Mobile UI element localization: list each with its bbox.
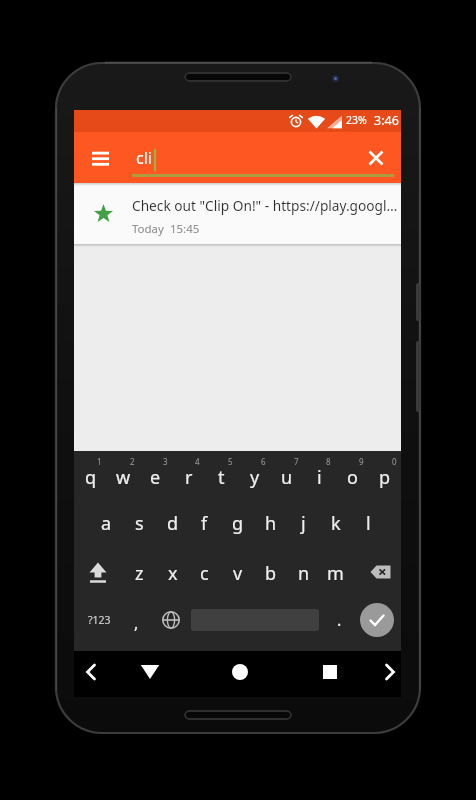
- button[interactable]: l: [352, 503, 385, 543]
- button[interactable]: .: [327, 605, 351, 635]
- staticText: 4: [195, 456, 200, 467]
- staticText: i: [317, 465, 322, 490]
- button[interactable]: z: [123, 553, 156, 593]
- staticText: .: [337, 609, 342, 631]
- button[interactable]: r: [172, 457, 205, 497]
- staticText: k: [331, 511, 341, 536]
- staticText: 1: [97, 456, 102, 467]
- staticText: l: [366, 511, 371, 536]
- staticText: p: [379, 465, 391, 490]
- button[interactable]: t: [205, 457, 238, 497]
- staticText: b: [265, 561, 277, 586]
- staticText: 5: [228, 456, 233, 467]
- button[interactable]: ?123: [77, 605, 121, 635]
- staticText: u: [281, 465, 293, 490]
- staticText: n: [298, 561, 310, 586]
- staticText: ,: [134, 612, 139, 634]
- button[interactable]: m: [319, 553, 352, 593]
- button[interactable]: s: [123, 503, 156, 543]
- staticText: t: [218, 465, 225, 490]
- button[interactable]: [78, 659, 104, 685]
- staticText: q: [85, 465, 97, 490]
- staticText: Check out "Clip On!" - https://play.goog…: [132, 196, 402, 215]
- staticText: 9: [359, 456, 364, 467]
- button[interactable]: b: [254, 553, 287, 593]
- button[interactable]: Check out "Clip On!" - https://play.goog…: [74, 183, 401, 244]
- button[interactable]: [82, 555, 116, 591]
- button[interactable]: [136, 659, 164, 685]
- staticText: y: [250, 465, 260, 490]
- staticText: j: [301, 511, 306, 536]
- staticText: c: [200, 561, 209, 586]
- button[interactable]: ,: [124, 608, 148, 638]
- button[interactable]: [363, 555, 397, 591]
- button[interactable]: c: [188, 553, 221, 593]
- button[interactable]: j: [287, 503, 320, 543]
- button[interactable]: o: [336, 457, 369, 497]
- staticText: 7: [294, 456, 299, 467]
- button[interactable]: e: [139, 457, 172, 497]
- button[interactable]: q: [74, 457, 107, 497]
- button[interactable]: i: [303, 457, 336, 497]
- staticText: o: [347, 465, 358, 490]
- staticText: 3:46: [374, 112, 399, 129]
- button[interactable]: v: [221, 553, 254, 593]
- staticText: f: [201, 511, 208, 536]
- staticText: 2: [130, 456, 135, 467]
- staticText: 3: [163, 456, 168, 467]
- button[interactable]: g: [221, 503, 254, 543]
- button[interactable]: a: [90, 503, 123, 543]
- staticText: cli: [136, 147, 152, 169]
- button[interactable]: h: [254, 503, 287, 543]
- staticText: ?123: [88, 613, 111, 627]
- button[interactable]: [156, 605, 186, 635]
- button[interactable]: y: [238, 457, 271, 497]
- staticText: d: [167, 511, 179, 536]
- staticText: h: [265, 511, 277, 536]
- button[interactable]: [377, 659, 403, 685]
- button[interactable]: d: [156, 503, 189, 543]
- button[interactable]: k: [319, 503, 352, 543]
- button[interactable]: p: [368, 457, 401, 497]
- button[interactable]: [360, 603, 394, 637]
- staticText: z: [135, 561, 144, 586]
- button[interactable]: w: [107, 457, 140, 497]
- button[interactable]: x: [156, 553, 189, 593]
- staticText: w: [116, 465, 131, 490]
- staticText: 0: [392, 456, 397, 467]
- button[interactable]: n: [287, 553, 320, 593]
- staticText: g: [232, 511, 244, 536]
- staticText: s: [135, 511, 144, 536]
- staticText: x: [168, 561, 178, 586]
- staticText: v: [233, 561, 243, 586]
- button[interactable]: [88, 146, 113, 171]
- button[interactable]: [316, 658, 344, 686]
- button[interactable]: f: [188, 503, 221, 543]
- button[interactable]: [226, 658, 254, 686]
- staticText: Today 15:45: [132, 221, 200, 237]
- staticText: a: [101, 511, 112, 536]
- staticText: 6: [261, 456, 266, 467]
- staticText: m: [327, 561, 344, 586]
- staticText: 23%: [346, 113, 367, 127]
- staticText: r: [185, 465, 193, 490]
- staticText: 8: [326, 456, 331, 467]
- button[interactable]: [363, 145, 389, 171]
- staticText: e: [150, 465, 161, 490]
- button[interactable]: u: [270, 457, 303, 497]
